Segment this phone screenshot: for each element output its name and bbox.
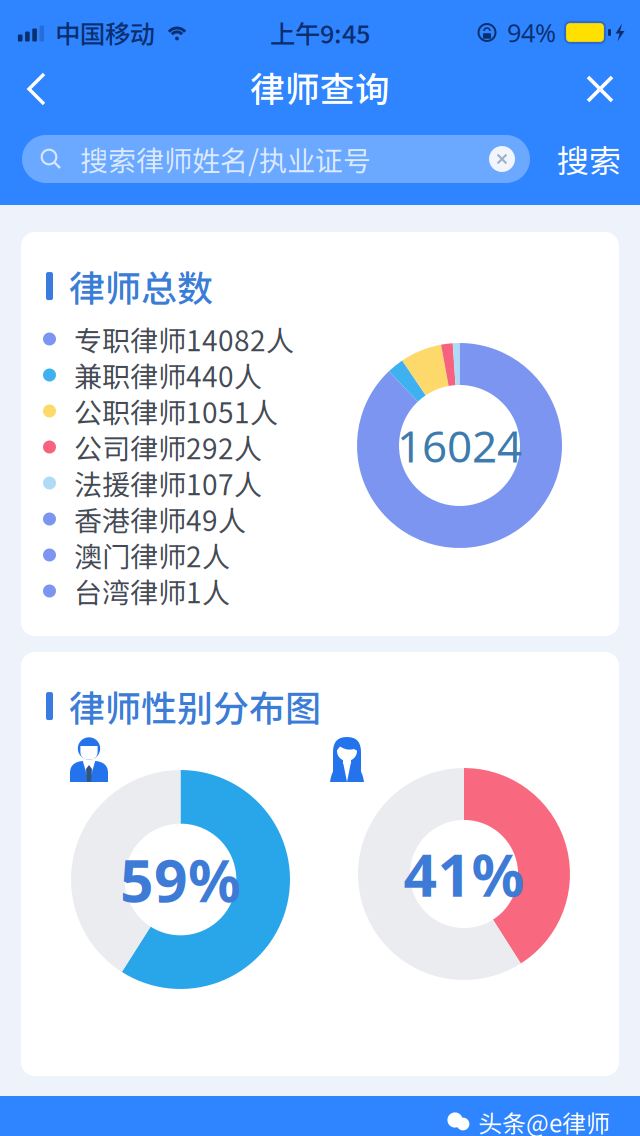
button[interactable]: 搜索 — [556, 135, 622, 183]
staticText: 专职律师14082人 — [74, 319, 294, 359]
button[interactable]: 搜索律师姓名/执业证号 — [22, 135, 530, 183]
staticText: 澳门律师2人 — [74, 535, 230, 575]
staticText: 律师查询 — [250, 62, 390, 112]
staticText: 公司律师292人 — [74, 427, 262, 467]
staticText: 律师性别分布图 — [69, 680, 321, 732]
staticText: 41% — [403, 835, 524, 913]
staticText: 兼职律师440人 — [74, 355, 262, 395]
staticText: 59% — [120, 840, 241, 918]
staticText: 头条@e律师 — [478, 1105, 610, 1136]
button[interactable]: Close — [560, 56, 640, 122]
button[interactable]: Back — [0, 56, 74, 122]
staticText: 94% — [507, 16, 556, 49]
staticText: 上午9:45 — [270, 14, 370, 51]
staticText: 香港律师49人 — [74, 499, 246, 539]
staticText: 公职律师1051人 — [74, 391, 278, 431]
staticText: 搜索 — [557, 136, 621, 182]
staticText: 16024 — [397, 416, 522, 475]
staticText: 法援律师107人 — [74, 463, 262, 503]
staticText: 台湾律师1人 — [74, 571, 230, 611]
staticText: 中国移动 — [55, 14, 155, 51]
staticText: 搜索律师姓名/执业证号 — [80, 139, 371, 179]
staticText: 律师总数 — [69, 260, 213, 312]
